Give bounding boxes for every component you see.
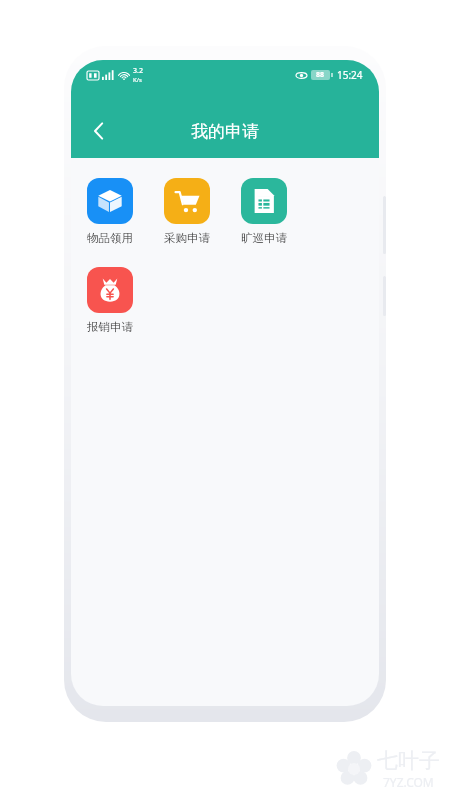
- button[interactable]: 物品领用: [71, 170, 148, 253]
- staticText: 我的申请: [191, 121, 259, 142]
- staticText: 15:24: [337, 68, 363, 82]
- staticText: 7YZ.COM: [383, 774, 434, 790]
- button[interactable]: 采购申请: [148, 170, 225, 253]
- button[interactable]: Back: [77, 109, 121, 153]
- staticText: 报销申请: [87, 320, 133, 334]
- staticText: 采购申请: [164, 231, 210, 245]
- staticText: K/s: [133, 76, 142, 84]
- staticText: 3.2: [133, 66, 143, 76]
- button[interactable]: 报销申请: [71, 259, 148, 342]
- staticText: 旷巡申请: [241, 231, 287, 245]
- staticText: 七叶子: [377, 748, 440, 774]
- button[interactable]: 旷巡申请: [225, 170, 302, 253]
- staticText: 物品领用: [87, 231, 133, 245]
- staticText: 88: [316, 70, 325, 80]
